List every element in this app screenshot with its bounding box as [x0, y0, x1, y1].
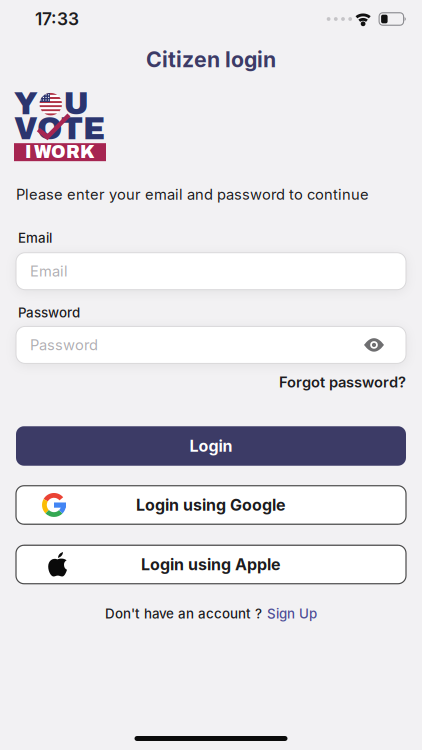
button[interactable]: Login using Google: [16, 486, 406, 524]
staticText: VOTE: [14, 113, 105, 146]
staticText: U: [63, 88, 88, 121]
staticText: Password: [18, 305, 80, 320]
button[interactable]: Login using Apple: [16, 545, 406, 584]
staticText: Email: [30, 262, 68, 280]
staticText: Login: [189, 436, 232, 455]
staticText: Password: [30, 336, 98, 354]
button[interactable]: Sign Up: [267, 606, 317, 621]
staticText: Y: [14, 88, 38, 121]
staticText: Citizen login: [146, 47, 276, 72]
button[interactable]: Forgot password?: [279, 373, 406, 391]
staticText: 17:33: [35, 9, 79, 29]
staticText: Please enter your email and password to …: [16, 186, 369, 203]
staticText: Forgot password?: [279, 373, 406, 391]
button[interactable]: Login: [16, 426, 406, 466]
staticText: Don't have an account ?: [105, 606, 262, 621]
button[interactable]: Email: [16, 253, 406, 290]
staticText: Sign Up: [267, 606, 317, 621]
staticText: Login using Apple: [141, 555, 281, 574]
staticText: I WORK: [25, 143, 95, 162]
staticText: Email: [18, 230, 52, 246]
button[interactable]: Password: [16, 326, 406, 363]
staticText: Login using Google: [136, 495, 286, 514]
button[interactable]: Show password: [364, 339, 406, 351]
